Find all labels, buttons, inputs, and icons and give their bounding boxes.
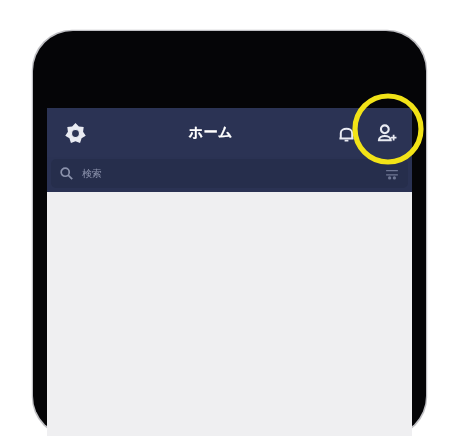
button[interactable]: Add person (366, 113, 406, 153)
button[interactable]: Notifications (326, 113, 366, 153)
staticText: ホーム (188, 124, 233, 142)
button[interactable]: 検索 (51, 159, 408, 188)
button[interactable]: Filter (379, 161, 405, 187)
button[interactable]: Settings (55, 113, 95, 153)
staticText: 検索 (82, 167, 102, 180)
